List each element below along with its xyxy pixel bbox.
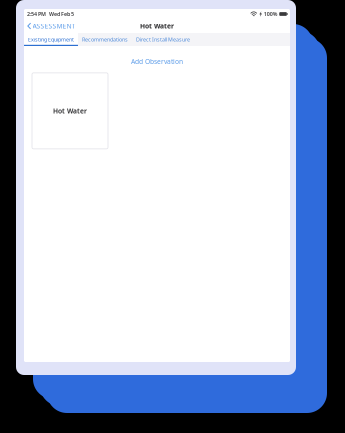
staticText: Hot Water xyxy=(53,106,87,115)
staticText: Hot Water xyxy=(140,22,174,30)
button[interactable]: Hot Water xyxy=(32,73,108,149)
button[interactable]: Recommendations xyxy=(78,33,132,46)
staticText: Direct Install Measure xyxy=(136,36,190,43)
staticText: Existing Equipment xyxy=(28,36,74,43)
staticText: 2:54 PM Wed Feb 5 xyxy=(27,10,74,18)
staticText: ASSESSMENT xyxy=(33,22,76,30)
staticText: Recommendations xyxy=(82,36,128,43)
staticText: Add Observation xyxy=(131,57,183,66)
staticText: 100% xyxy=(264,10,278,18)
button[interactable]: Existing Equipment xyxy=(24,33,78,46)
button[interactable]: ASSESSMENT xyxy=(24,19,79,33)
button[interactable]: Add Observation xyxy=(127,55,187,68)
button[interactable]: Direct Install Measure xyxy=(132,33,194,46)
